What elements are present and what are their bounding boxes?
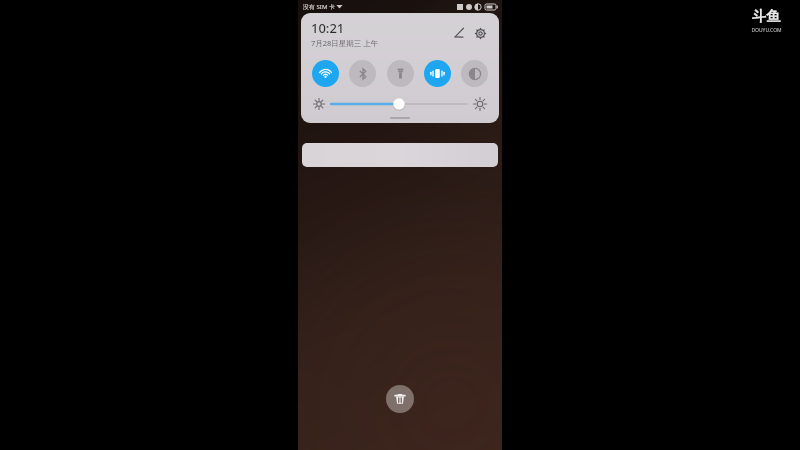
staticText: 没有 SIM 卡	[303, 3, 335, 11]
button[interactable]: Dark mode	[461, 60, 488, 87]
button[interactable]: Bluetooth	[349, 60, 376, 87]
button[interactable]: Clear all notifications	[386, 385, 414, 413]
button[interactable]: Brightness	[331, 97, 467, 111]
staticText: 7月28日星期三 上午	[311, 38, 379, 48]
button[interactable]: Edit	[449, 23, 469, 43]
button[interactable]: Vibrate	[424, 60, 451, 87]
button[interactable]: Settings	[469, 22, 491, 44]
button[interactable]: Wi-Fi	[312, 60, 339, 87]
staticText: 斗鱼	[752, 8, 780, 26]
staticText: DOUYU.COM	[751, 27, 782, 34]
staticText: 10:21	[311, 19, 345, 37]
button[interactable]	[302, 143, 498, 167]
button[interactable]: Flashlight	[387, 60, 414, 87]
